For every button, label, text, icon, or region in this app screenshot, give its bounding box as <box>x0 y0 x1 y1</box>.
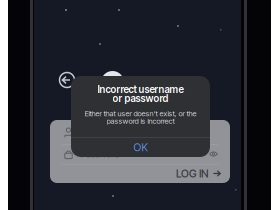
button[interactable]: OK <box>71 138 210 157</box>
staticText: or password <box>112 92 168 104</box>
staticText: password is incorrect <box>106 116 174 125</box>
staticText: Username <box>81 127 122 139</box>
staticText: Password <box>81 148 119 160</box>
button[interactable]: LOG IN <box>50 165 230 182</box>
button[interactable]: Back <box>55 68 79 92</box>
staticText: Incorrect username <box>97 83 183 95</box>
staticText: Either that user doesn't exist, or the <box>84 109 196 118</box>
staticText: LOG IN <box>176 167 209 180</box>
staticText: OK <box>133 141 147 154</box>
